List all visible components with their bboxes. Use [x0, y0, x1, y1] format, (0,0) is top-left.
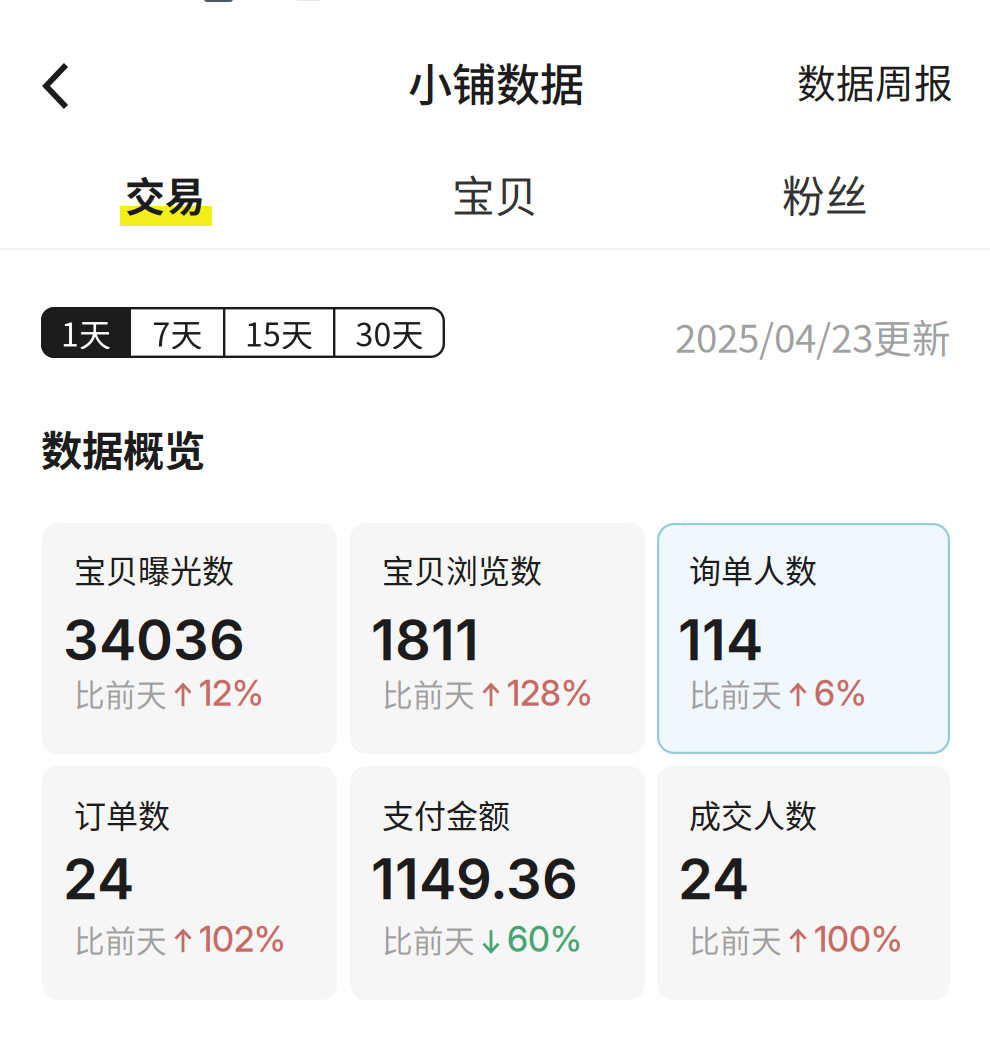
- button[interactable]: 数据周报: [770, 42, 980, 120]
- button[interactable]: 宝贝浏览数: [350, 523, 645, 754]
- button[interactable]: 1天: [41, 307, 131, 358]
- staticText: 支付金额: [382, 791, 510, 837]
- button[interactable]: 粉丝: [660, 146, 990, 242]
- staticText: 数据概览: [41, 418, 205, 478]
- staticText: 102%: [199, 918, 286, 960]
- staticText: 比前天: [382, 917, 475, 961]
- staticText: 34036: [63, 606, 245, 674]
- button[interactable]: 订单数: [42, 766, 337, 1000]
- staticText: 成交人数: [689, 791, 817, 837]
- staticText: 2025/04/23更新: [675, 308, 951, 364]
- button[interactable]: 15天: [224, 307, 334, 358]
- staticText: 宝贝: [452, 163, 538, 225]
- staticText: 粉丝: [782, 163, 868, 225]
- staticText: 比前天: [74, 917, 167, 961]
- staticText: 数据周报: [797, 53, 953, 109]
- staticText: 比前天: [382, 671, 475, 715]
- staticText: 100%: [814, 918, 903, 960]
- staticText: 12%: [199, 672, 264, 714]
- button[interactable]: 交易: [0, 152, 330, 248]
- staticText: 24: [63, 845, 134, 913]
- staticText: 比前天: [74, 671, 167, 715]
- staticText: 1149.36: [371, 845, 578, 913]
- staticText: 比前天: [689, 671, 782, 715]
- staticText: 15天: [245, 309, 313, 356]
- staticText: 60%: [507, 918, 582, 960]
- staticText: 询单人数: [689, 546, 817, 592]
- button[interactable]: 支付金额: [350, 766, 645, 1000]
- staticText: 114: [678, 606, 763, 674]
- button[interactable]: 7天: [131, 307, 224, 358]
- button[interactable]: 30天: [334, 307, 445, 358]
- button[interactable]: 宝贝: [330, 146, 660, 242]
- staticText: 7天: [152, 309, 202, 356]
- staticText: 宝贝曝光数: [74, 546, 234, 592]
- staticText: 128%: [507, 672, 593, 714]
- button[interactable]: 成交人数: [657, 766, 950, 1000]
- staticText: 24: [678, 845, 749, 913]
- button[interactable]: 询单人数: [657, 523, 950, 754]
- button[interactable]: 宝贝曝光数: [42, 523, 337, 754]
- staticText: 比前天: [689, 917, 782, 961]
- staticText: 30天: [355, 309, 423, 356]
- staticText: 1811: [371, 606, 479, 674]
- staticText: 宝贝浏览数: [382, 546, 542, 592]
- staticText: 6%: [814, 672, 867, 714]
- staticText: 订单数: [74, 791, 170, 837]
- staticText: 1天: [61, 309, 111, 356]
- button[interactable]: Back: [6, 42, 106, 130]
- staticText: 小铺数据: [408, 50, 584, 114]
- staticText: 交易: [125, 165, 205, 223]
